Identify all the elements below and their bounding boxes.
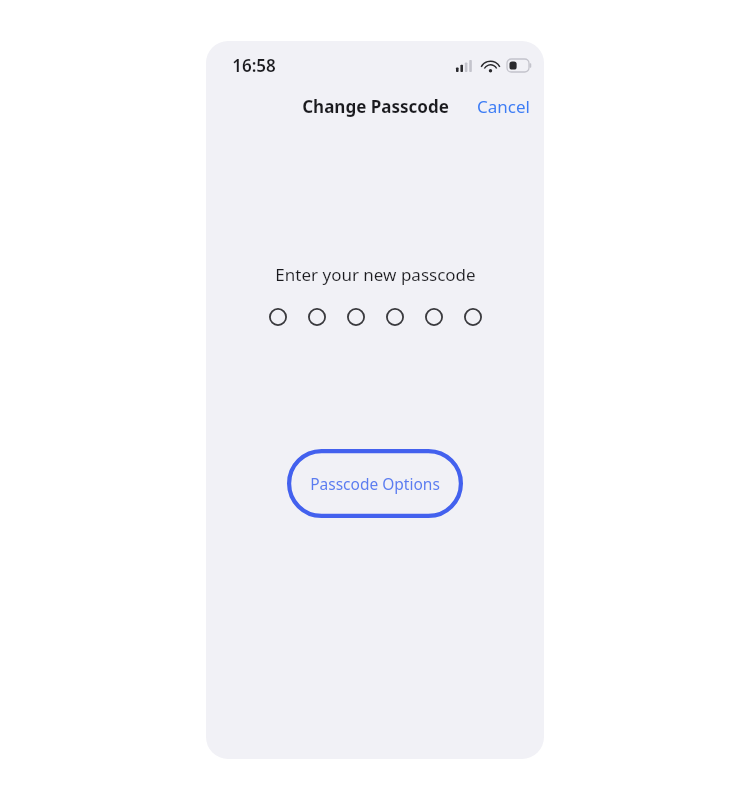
staticText: Cancel	[477, 95, 530, 118]
staticText: Enter your new passcode	[275, 263, 476, 286]
staticText: Change Passcode	[302, 95, 449, 118]
staticText: Passcode Options	[310, 473, 440, 494]
button[interactable]: Passcode Options	[287, 449, 463, 518]
staticText: 16:58	[232, 54, 276, 77]
button[interactable]: Cancel	[463, 91, 544, 122]
